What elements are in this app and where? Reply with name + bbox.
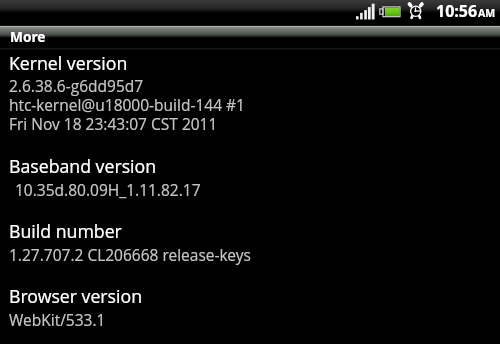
staticText: Fri Nov 18 23:43:07 CST 2011 [9, 113, 218, 134]
staticText: Kernel version [9, 51, 128, 75]
staticText: Build number [9, 219, 122, 243]
button[interactable]: Kernel version [9, 51, 128, 75]
other: Status icons [0, 0, 500, 25]
button[interactable]: Build number [9, 219, 122, 243]
staticText: 1.27.707.2 CL206668 release-keys [9, 244, 251, 265]
staticText: Baseband version [9, 154, 157, 178]
staticText: WebKit/533.1 [9, 309, 106, 330]
staticText: 10:56 [436, 0, 478, 22]
button[interactable]: Browser version [9, 284, 143, 308]
staticText: 10.35d.80.09H_1.11.82.17 [15, 179, 201, 200]
staticText: More [10, 27, 46, 46]
staticText: AM [478, 6, 496, 20]
staticText: 2.6.38.6-g6dd95d7 [9, 75, 144, 96]
button[interactable]: Baseband version [9, 154, 157, 178]
staticText: htc-kernel@u18000-build-144 #1 [9, 94, 245, 115]
staticText: Browser version [9, 284, 143, 308]
